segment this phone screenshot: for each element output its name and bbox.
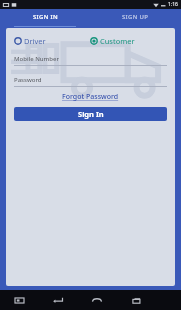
button[interactable]: Sign In xyxy=(14,107,167,121)
button[interactable]: Home xyxy=(88,291,106,309)
button[interactable]: Recent apps xyxy=(127,291,145,309)
staticText: SIGN IN xyxy=(33,13,58,21)
button[interactable]: SIGN IN xyxy=(0,9,90,28)
staticText: Forgot Password xyxy=(62,92,119,102)
staticText: Password xyxy=(14,76,42,84)
button[interactable]: Driver xyxy=(14,35,90,47)
button[interactable]: Back xyxy=(49,291,67,309)
staticText: SIGN UP xyxy=(122,13,149,21)
staticText: Sign In xyxy=(78,109,104,119)
button[interactable]: Customer xyxy=(90,35,167,47)
button[interactable]: Password xyxy=(14,76,167,87)
button[interactable]: Forgot Password xyxy=(58,90,123,104)
button[interactable]: Hide keyboard xyxy=(10,291,28,309)
staticText: Customer xyxy=(100,36,135,46)
button[interactable]: Mobile Number xyxy=(14,55,167,66)
staticText: 1:16 xyxy=(168,1,178,8)
button[interactable]: SIGN UP xyxy=(90,9,181,28)
staticText: Mobile Number xyxy=(14,55,59,63)
staticText: Driver xyxy=(24,36,46,46)
